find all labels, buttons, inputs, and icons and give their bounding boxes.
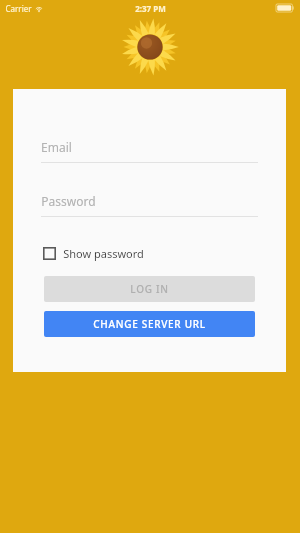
staticText: Carrier bbox=[5, 3, 32, 14]
staticText: CHANGE SERVER URL bbox=[93, 317, 206, 331]
button[interactable]: CHANGE SERVER URL bbox=[44, 311, 255, 337]
staticText: LOG IN bbox=[130, 282, 169, 296]
staticText: Show password bbox=[63, 246, 144, 261]
button[interactable]: Password bbox=[41, 193, 258, 217]
staticText: Password bbox=[41, 193, 96, 209]
button[interactable]: LOG IN bbox=[44, 276, 255, 302]
staticText: Email bbox=[41, 139, 72, 155]
staticText: 2:37 PM bbox=[135, 3, 166, 14]
button[interactable]: Show password bbox=[41, 244, 146, 263]
button[interactable]: Email bbox=[41, 139, 258, 163]
